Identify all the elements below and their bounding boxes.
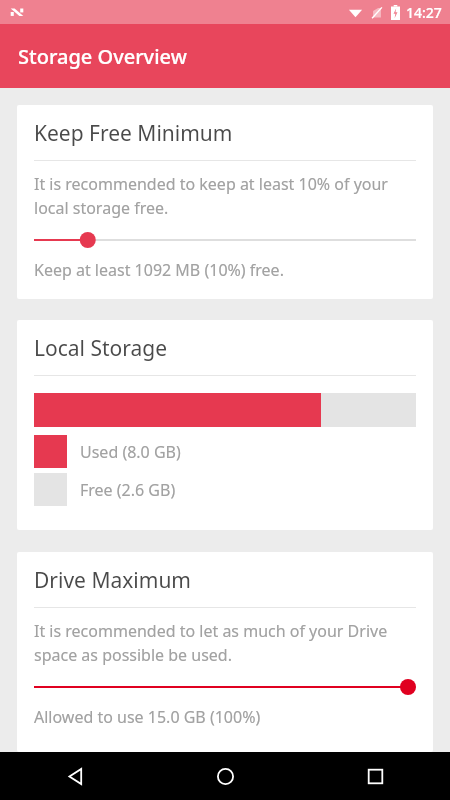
button[interactable]: Slider — [34, 225, 416, 255]
button[interactable]: Back — [0, 752, 150, 800]
staticText: Storage Overview — [18, 43, 187, 70]
staticText: It is recommended to let as much of your… — [34, 620, 416, 666]
button[interactable]: Home — [150, 752, 300, 800]
button[interactable]: Recent apps — [300, 752, 450, 800]
button[interactable]: Slider — [34, 672, 416, 702]
staticText: Allowed to use 15.0 GB (100%) — [34, 706, 261, 728]
button[interactable]: Local Storage — [17, 320, 433, 530]
staticText: 14:27 — [406, 3, 442, 22]
button[interactable]: Drive Maximum — [17, 552, 433, 752]
staticText: Drive Maximum — [34, 566, 191, 595]
staticText: Used (8.0 GB) — [80, 441, 181, 463]
staticText: It is recommended to keep at least 10% o… — [34, 173, 416, 219]
button[interactable]: Keep Free Minimum — [17, 105, 433, 299]
staticText: Local Storage — [34, 334, 168, 363]
staticText: Keep Free Minimum — [34, 119, 233, 148]
staticText: Free (2.6 GB) — [80, 479, 176, 501]
staticText: Keep at least 1092 MB (10%) free. — [34, 259, 284, 281]
